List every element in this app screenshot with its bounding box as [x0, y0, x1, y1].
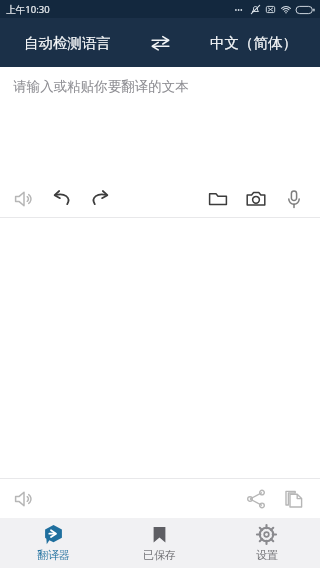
button[interactable]: Voice input [275, 180, 313, 217]
button[interactable]: Camera [237, 180, 275, 217]
button[interactable]: 翻译器 [0, 518, 106, 568]
staticText: 请输入或粘贴你要翻译的文本 [13, 78, 189, 95]
button[interactable]: Listen to translation [5, 480, 43, 517]
button[interactable]: 自动检测语言 [0, 18, 134, 67]
button[interactable]: Copy [275, 480, 313, 517]
button[interactable]: Share [237, 480, 275, 517]
button[interactable]: 已保存 [106, 518, 213, 568]
staticText: 中文（简体） [210, 34, 297, 52]
staticText: 已保存 [143, 548, 176, 562]
button[interactable]: Swap languages [134, 18, 186, 67]
button[interactable]: Documents [199, 180, 237, 217]
staticText: 翻译器 [37, 548, 70, 562]
button[interactable]: 中文（简体） [186, 18, 320, 67]
staticText: 自动检测语言 [24, 34, 111, 52]
button[interactable]: Listen [5, 180, 43, 217]
button[interactable]: 请输入或粘贴你要翻译的文本 [0, 67, 320, 180]
button[interactable]: 设置 [213, 518, 320, 568]
button[interactable]: Redo [81, 180, 119, 217]
staticText: 设置 [256, 548, 278, 562]
button[interactable]: Undo [43, 180, 81, 217]
staticText: 上午10:30 [6, 3, 50, 16]
